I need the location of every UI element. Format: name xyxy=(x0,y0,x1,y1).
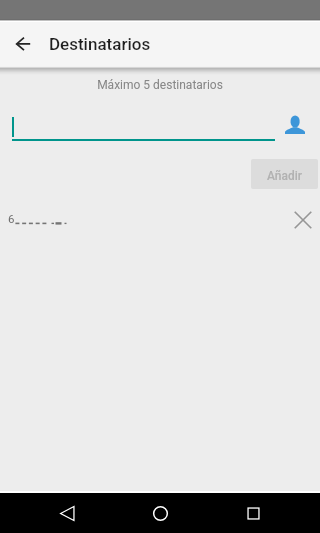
staticText: Destinatarios xyxy=(49,34,151,54)
button[interactable]: Home xyxy=(140,493,180,533)
staticText: 6 xyxy=(8,212,15,225)
button[interactable]: Back xyxy=(3,24,43,64)
staticText: Máximo 5 destinatarios xyxy=(0,78,320,92)
button[interactable]: 6 xyxy=(0,200,320,235)
button[interactable]: Choose contact xyxy=(283,112,307,136)
staticText: Añadir xyxy=(267,169,303,183)
button[interactable]: Back xyxy=(47,493,87,533)
button[interactable]: Añadir xyxy=(251,159,318,189)
button[interactable]: Recent apps xyxy=(233,493,273,533)
button[interactable]: Recipient phone number field xyxy=(12,111,275,139)
button[interactable]: Remove recipient xyxy=(290,207,316,233)
